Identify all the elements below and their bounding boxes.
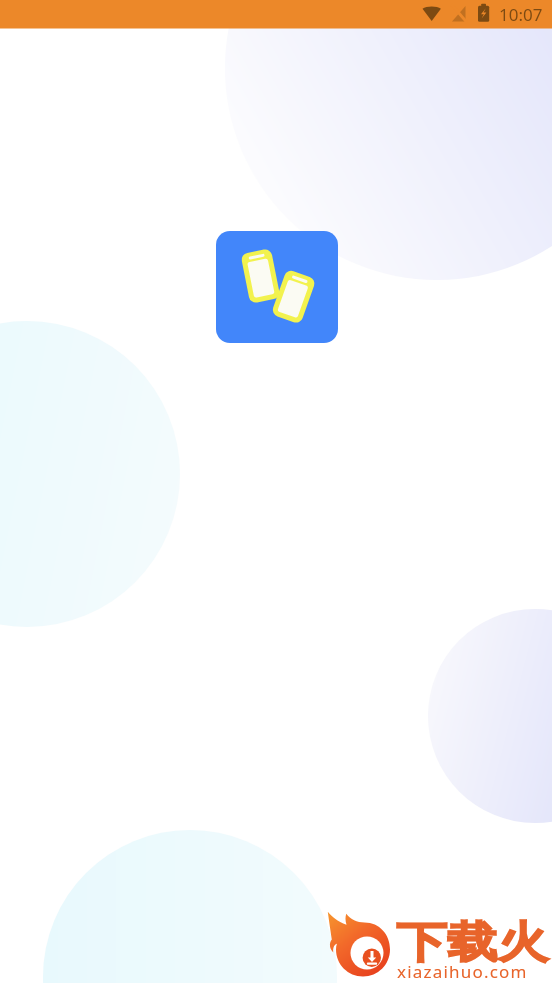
button[interactable]: App logo [216, 231, 338, 343]
